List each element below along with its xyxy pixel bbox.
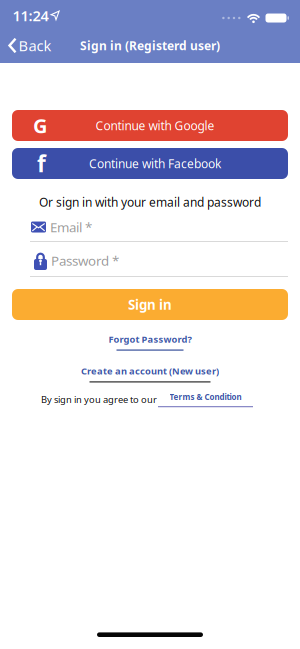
staticText: 11:24 [12, 6, 48, 25]
staticText: Forgot Password? [108, 333, 191, 345]
staticText: Continue with Google [95, 117, 214, 133]
staticText: Password * [51, 252, 119, 269]
button[interactable]: Forgot Password? [108, 333, 191, 351]
button[interactable]: G [0, 110, 300, 141]
button[interactable]: f [0, 148, 300, 179]
staticText: Back [18, 36, 51, 55]
button[interactable]: Create an account (New user) [81, 365, 219, 383]
staticText: G [33, 112, 47, 139]
staticText: Email * [50, 218, 92, 236]
staticText: By sign in you agree to our [41, 393, 157, 406]
staticText: Or sign in with your email and password [39, 194, 261, 210]
staticText: Terms & Condition [169, 392, 241, 402]
staticText: Create an account (New user) [81, 365, 219, 377]
button[interactable]: Terms & Condition [158, 392, 253, 407]
staticText: Sign in [128, 296, 172, 313]
staticText: f [37, 148, 46, 178]
button[interactable]: Sign in [0, 289, 300, 320]
button[interactable]: Back [0, 36, 51, 55]
staticText: Continue with Facebook [89, 155, 221, 171]
staticText: Sign in (Registerd user) [80, 37, 220, 53]
